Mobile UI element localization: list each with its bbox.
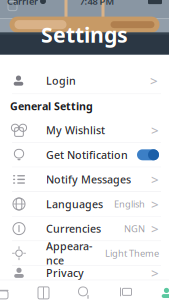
staticText: Settings bbox=[41, 20, 128, 49]
button[interactable]: Privacy bbox=[0, 266, 169, 280]
staticText: Currencies bbox=[46, 221, 101, 236]
staticText: Languages bbox=[46, 197, 103, 211]
button[interactable]: Search bbox=[68, 281, 101, 300]
staticText: Light Theme bbox=[105, 247, 159, 259]
staticText: Privacy bbox=[46, 266, 84, 280]
button[interactable]: My Wishlist bbox=[0, 118, 169, 142]
staticText: Carrier bbox=[7, 0, 38, 7]
staticText: English bbox=[114, 198, 145, 210]
staticText: > bbox=[151, 220, 159, 237]
staticText: Appearance bbox=[46, 239, 92, 267]
button[interactable]: Languages bbox=[0, 192, 169, 216]
button[interactable]: Notify Messages bbox=[0, 167, 169, 191]
button[interactable]: Catalog bbox=[27, 281, 60, 300]
button[interactable]: Currencies bbox=[0, 217, 169, 241]
staticText: > bbox=[151, 170, 159, 188]
staticText: NGN bbox=[124, 222, 145, 235]
staticText: > bbox=[151, 195, 159, 213]
button[interactable]: Appearance bbox=[0, 241, 169, 265]
staticText: 7:48 PM bbox=[79, 0, 114, 7]
staticText: > bbox=[151, 121, 159, 139]
button[interactable]: Get Notification bbox=[0, 143, 169, 167]
button[interactable]: Cart bbox=[109, 281, 142, 300]
staticText: > bbox=[150, 72, 158, 89]
button[interactable]: Login bbox=[0, 68, 169, 94]
staticText: Notify Messages bbox=[46, 172, 131, 186]
button[interactable]: Account bbox=[150, 281, 169, 300]
staticText: Login bbox=[46, 73, 76, 88]
staticText: > bbox=[151, 264, 159, 282]
staticText: Get Notification bbox=[46, 148, 128, 162]
button[interactable]: Home bbox=[0, 281, 19, 300]
staticText: My Wishlist bbox=[46, 123, 105, 137]
staticText: General Setting bbox=[10, 99, 93, 113]
